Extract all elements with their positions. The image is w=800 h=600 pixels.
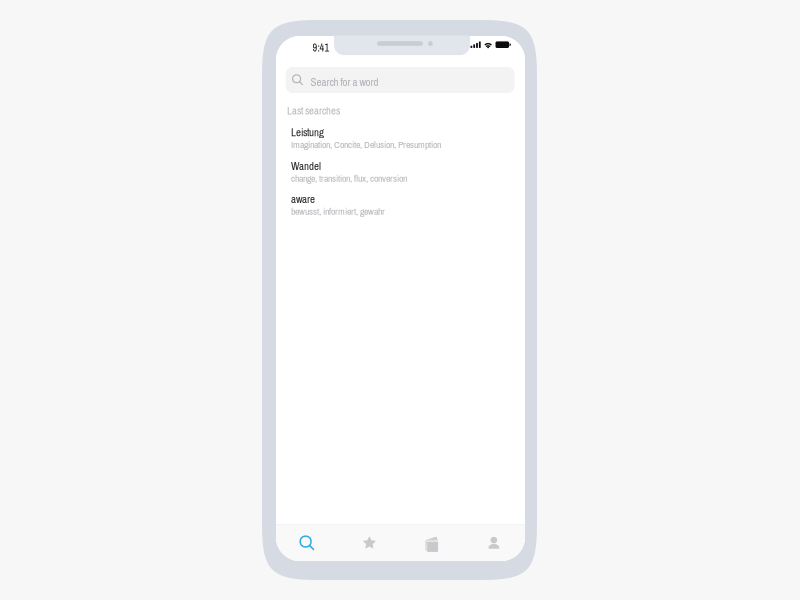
button[interactable]: Search for a word (286, 67, 515, 93)
staticText: Leistung (291, 125, 324, 140)
staticText: aware (291, 192, 315, 206)
button[interactable]: aware (291, 192, 525, 218)
staticText: change, transition, flux, conversion (291, 171, 407, 185)
staticText: Last searches (287, 103, 340, 118)
staticText: 9:41 (312, 41, 329, 55)
staticText: Imagination, Concite, Delusion, Presumpt… (291, 138, 441, 151)
staticText: Wandel (291, 159, 321, 173)
staticText: bewusst, informiert, gewahr (291, 204, 385, 218)
button[interactable]: Wandel (291, 159, 525, 185)
button[interactable]: Favourites (338, 525, 400, 561)
button[interactable]: Search (276, 525, 338, 561)
button[interactable]: Profile (463, 525, 525, 561)
staticText: Search for a word (310, 75, 378, 89)
button[interactable]: Leistung (291, 125, 525, 151)
button[interactable]: Flashcards (400, 525, 463, 561)
